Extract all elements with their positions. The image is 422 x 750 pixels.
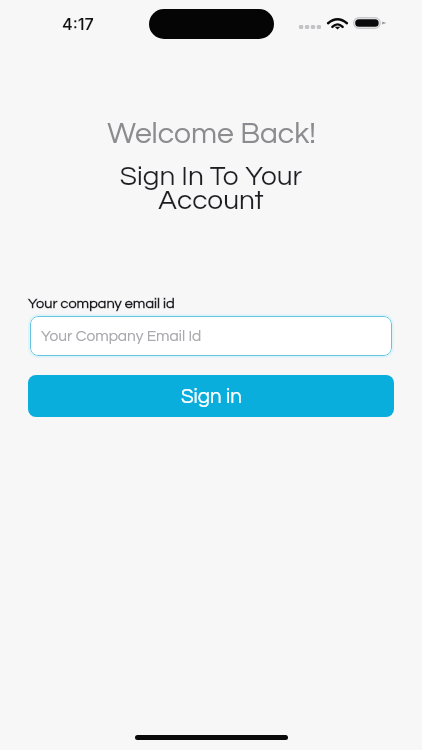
other: Battery: [353, 17, 386, 29]
staticText: Welcome Back!: [107, 118, 316, 149]
staticText: 4:17: [62, 14, 94, 33]
button[interactable]: Your Company Email Id: [30, 316, 392, 356]
button[interactable]: Sign in: [28, 375, 394, 417]
other: Cellular signal: [299, 25, 321, 29]
staticText: Sign in: [181, 386, 242, 407]
staticText: Your Company Email Id: [41, 328, 202, 344]
staticText: Sign In To Your Account: [81, 162, 341, 215]
staticText: Your company email id: [28, 296, 175, 311]
other: Wi-Fi: [327, 17, 348, 29]
